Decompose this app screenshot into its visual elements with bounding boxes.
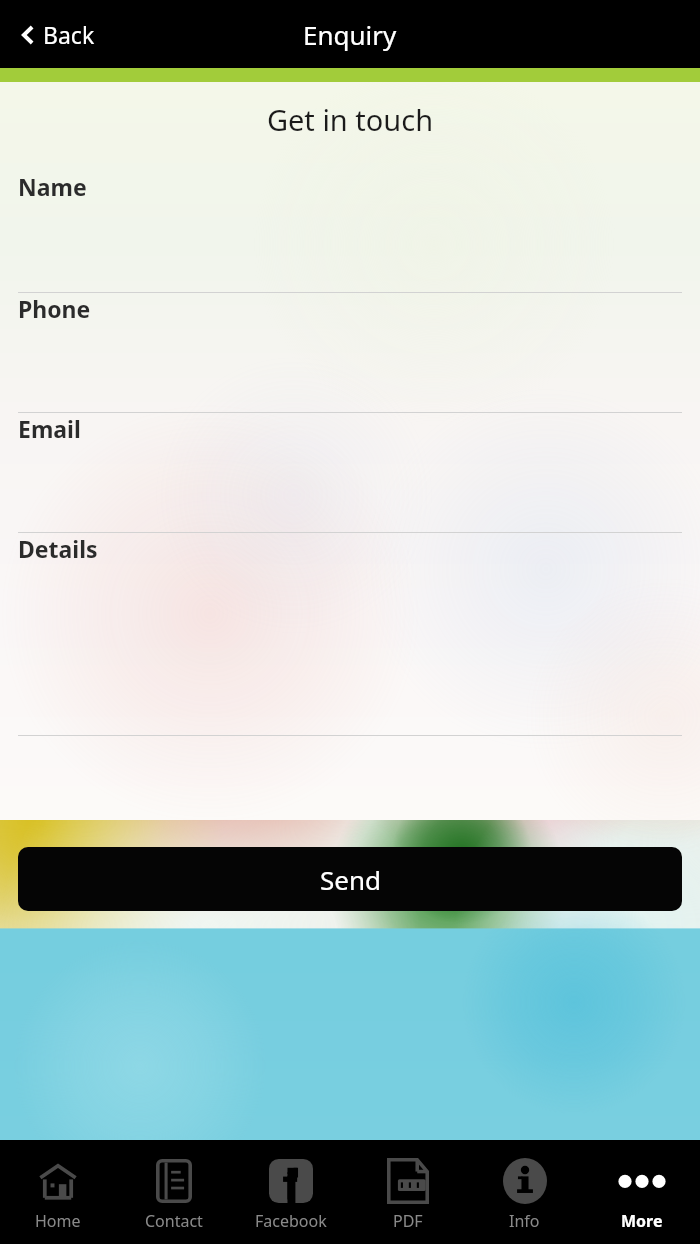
button[interactable]: Contact bbox=[116, 1140, 232, 1244]
staticText: Back bbox=[43, 19, 95, 50]
staticText: Info bbox=[509, 1210, 540, 1232]
staticText: Phone bbox=[18, 293, 91, 324]
button[interactable]: Home bbox=[0, 1140, 116, 1244]
button[interactable]: Back bbox=[18, 13, 99, 56]
staticText: More bbox=[621, 1210, 663, 1232]
button[interactable]: Facebook bbox=[232, 1140, 349, 1244]
staticText: Contact bbox=[145, 1210, 203, 1232]
staticText: Send bbox=[320, 862, 381, 897]
button[interactable]: PDF bbox=[349, 1140, 466, 1244]
staticText: Home bbox=[35, 1210, 81, 1232]
staticText: Details bbox=[18, 533, 98, 564]
staticText: Get in touch bbox=[0, 100, 700, 139]
button[interactable]: Info bbox=[466, 1140, 583, 1244]
staticText: Name bbox=[18, 171, 87, 202]
staticText: Enquiry bbox=[303, 17, 397, 52]
button[interactable]: Send bbox=[18, 847, 682, 911]
button[interactable]: More bbox=[583, 1140, 700, 1244]
staticText: Facebook bbox=[255, 1210, 327, 1232]
staticText: PDF bbox=[393, 1210, 423, 1232]
staticText: Email bbox=[18, 413, 81, 444]
